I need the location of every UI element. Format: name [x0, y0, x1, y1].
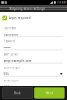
- staticText: Outgoing server settings: [8, 6, 44, 11]
- button[interactable]: Server port: [0, 76, 67, 89]
- staticText: Username: [4, 26, 17, 30]
- staticText: SSL: [4, 72, 9, 76]
- button[interactable]: Login required: [0, 12, 67, 24]
- staticText: Password: [4, 39, 16, 43]
- button[interactable]: Next: [34, 87, 65, 99]
- staticText: 7:07 AM: [57, 1, 66, 4]
- staticText: Login required: [9, 16, 31, 20]
- staticText: username: [4, 33, 19, 37]
- staticText: Security type: [4, 66, 21, 69]
- staticText: •••••••: [4, 46, 11, 50]
- button[interactable]: Back: [2, 87, 33, 99]
- staticText: 465: [4, 85, 10, 89]
- button[interactable]: Username: [0, 24, 67, 37]
- button[interactable]: SMTP server: [0, 50, 67, 63]
- staticText: Next: [46, 91, 53, 95]
- button[interactable]: Security type: [0, 63, 67, 76]
- staticText: SMTP server: [4, 53, 19, 56]
- staticText: Server port: [4, 79, 19, 82]
- button[interactable]: Password: [0, 37, 67, 50]
- staticText: smtp.example.com: [4, 59, 32, 63]
- staticText: Back: [14, 91, 21, 95]
